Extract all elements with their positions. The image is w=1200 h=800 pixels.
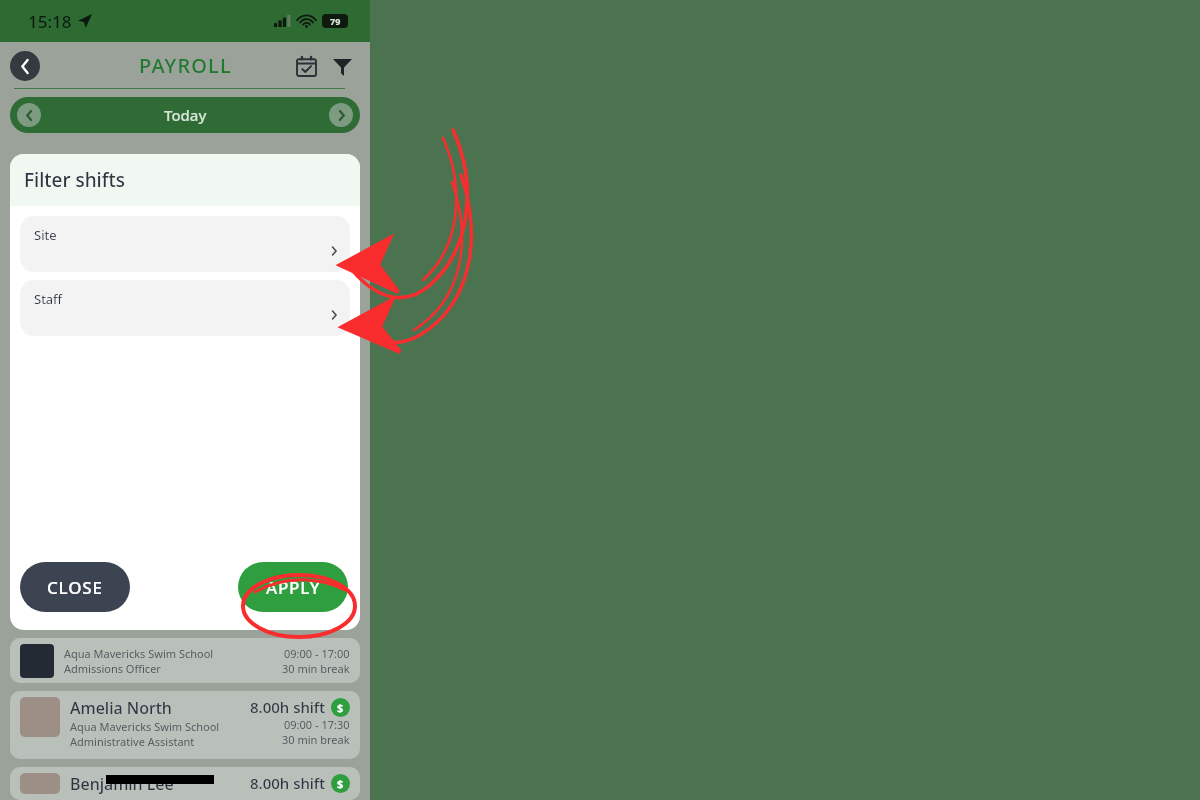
button[interactable]: APPLY (238, 562, 348, 612)
button[interactable]: Benjamin Lee (10, 767, 360, 800)
staticText: Amelia North (70, 697, 172, 719)
staticText: Aqua Mavericks Swim School (64, 646, 214, 661)
button[interactable]: Amelia North (10, 691, 360, 759)
staticText: 30 min break (282, 661, 350, 676)
staticText: $ (337, 776, 344, 791)
staticText: PAYROLL (139, 52, 232, 79)
staticText: Benjamin Lee (70, 773, 174, 794)
button[interactable]: Staff (20, 280, 350, 336)
staticText: Today (164, 105, 207, 125)
staticText: 8.00h shift (250, 773, 325, 793)
staticText: 09:00 - 17:30 (284, 717, 350, 732)
button[interactable]: Back (10, 51, 40, 81)
button[interactable]: Calendar (290, 50, 322, 82)
staticText: Staff (34, 290, 63, 308)
button[interactable]: Previous day (17, 103, 41, 127)
staticText: 30 min break (282, 732, 350, 747)
staticText: $ (337, 700, 344, 715)
staticText: Filter shifts (24, 167, 126, 193)
button[interactable]: CLOSE (20, 562, 130, 612)
button[interactable]: Filter (326, 50, 358, 82)
staticText: APPLY (266, 576, 321, 599)
button[interactable]: Next day (329, 103, 353, 127)
staticText: 09:00 - 17:00 (284, 646, 350, 661)
staticText: Administrative Assistant (70, 734, 195, 749)
button[interactable]: Site (20, 216, 350, 272)
staticText: 15:18 (28, 10, 72, 33)
staticText: Aqua Mavericks Swim School (70, 719, 220, 734)
staticText: Site (34, 226, 57, 244)
staticText: 8.00h shift (250, 697, 325, 717)
staticText: Admissions Officer (64, 661, 161, 676)
staticText: 79 (330, 15, 341, 27)
staticText: CLOSE (47, 576, 103, 599)
